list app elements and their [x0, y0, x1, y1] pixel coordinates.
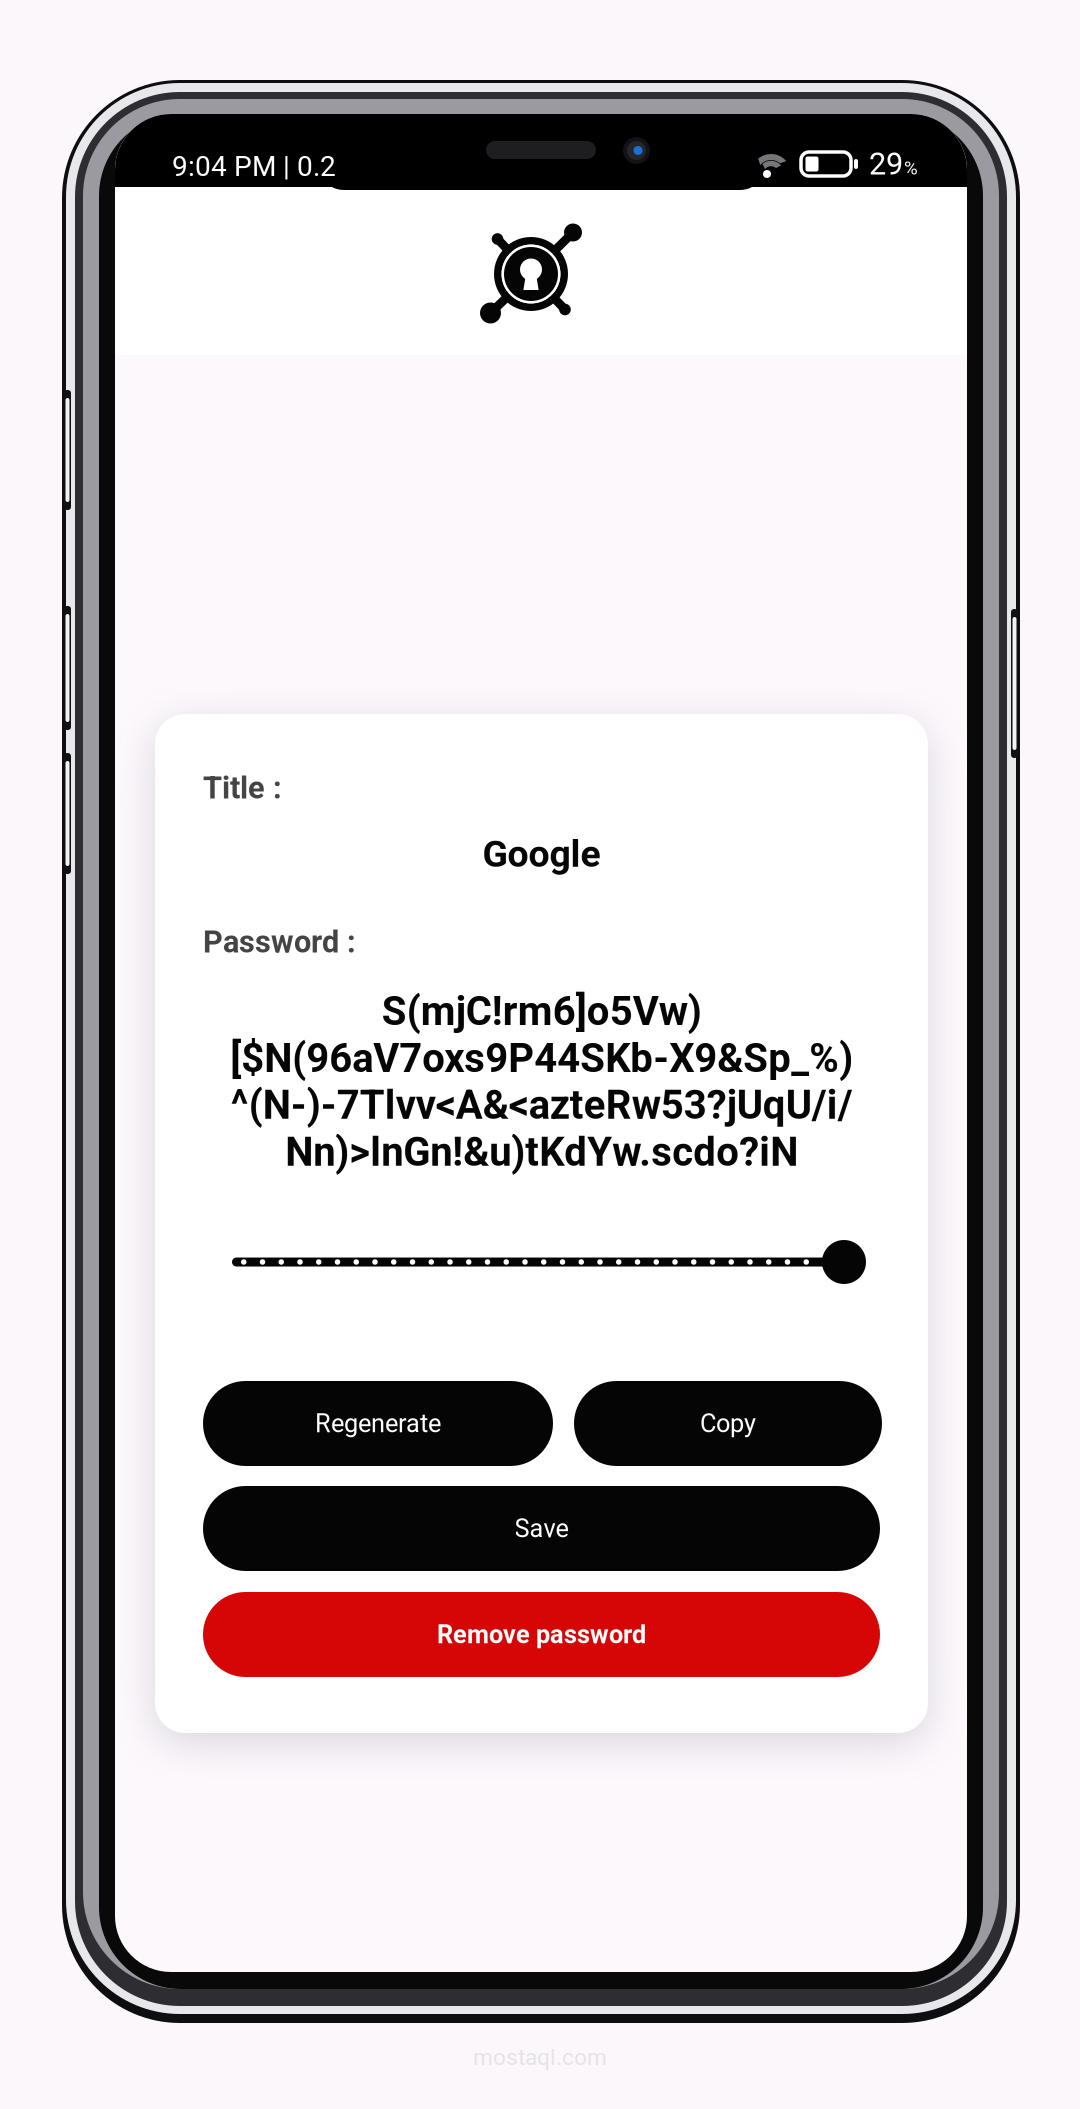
staticText: Regenerate — [315, 1409, 441, 1438]
staticText: Password : — [203, 924, 356, 960]
staticText: % — [904, 157, 918, 179]
button[interactable]: Save — [203, 1486, 880, 1571]
staticText: Google — [482, 832, 600, 876]
button[interactable]: Password length — [232, 1240, 868, 1284]
staticText: Remove password — [437, 1620, 646, 1649]
button[interactable]: Regenerate — [203, 1381, 553, 1466]
staticText: S(mjC!rm6]o5Vw) [$N(96aV7oxs9P44SKb-X9&S… — [230, 988, 853, 1175]
button[interactable]: Copy — [574, 1381, 882, 1466]
staticText: 29 — [869, 146, 903, 182]
button[interactable]: Remove password — [203, 1592, 880, 1677]
staticText: Title : — [203, 770, 282, 806]
staticText: 9:04 PM | 0.2 — [172, 150, 336, 183]
staticText: Save — [514, 1514, 568, 1543]
staticText: Copy — [700, 1409, 756, 1438]
staticText: mostaql.com — [473, 2044, 607, 2071]
